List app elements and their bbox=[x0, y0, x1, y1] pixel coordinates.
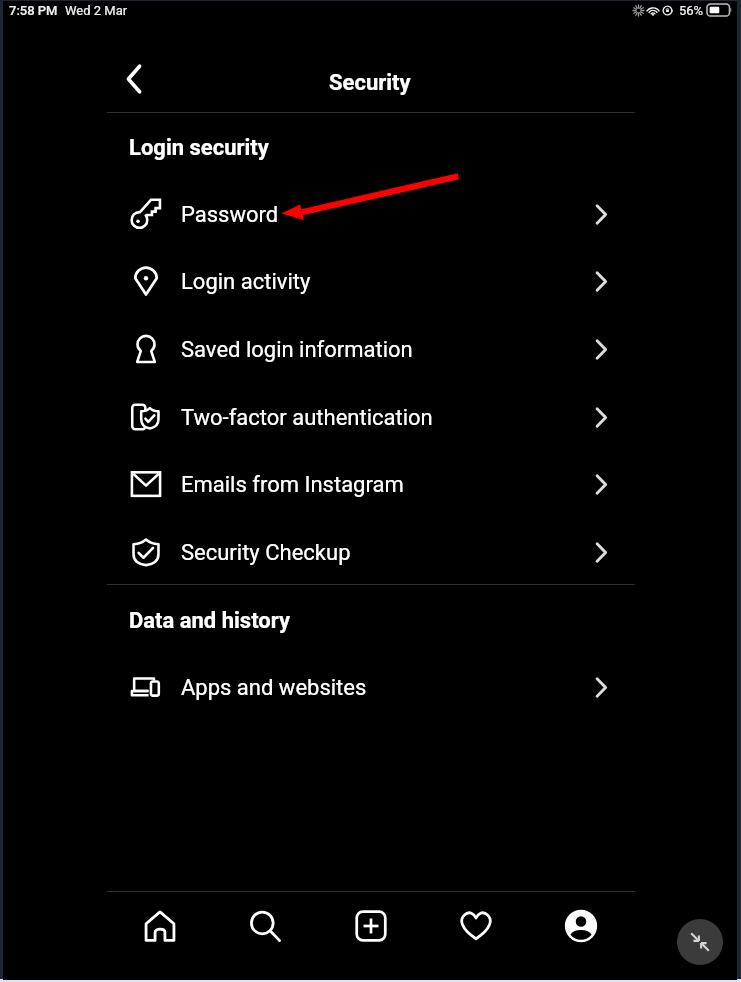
button[interactable]: Activity bbox=[449, 899, 503, 953]
button[interactable]: Exit fullscreen bbox=[677, 919, 723, 965]
staticText: 7:58 PM bbox=[9, 3, 58, 18]
button[interactable]: Password bbox=[107, 181, 635, 248]
staticText: Emails from Instagram bbox=[181, 472, 404, 498]
staticText: Security Checkup bbox=[181, 540, 351, 566]
staticText: Apps and websites bbox=[181, 675, 367, 701]
staticText: Password bbox=[181, 202, 279, 228]
staticText: Data and history bbox=[129, 608, 291, 634]
staticText: Login activity bbox=[181, 269, 311, 295]
button[interactable]: Login activity bbox=[107, 248, 635, 315]
staticText: Wed 2 Mar bbox=[65, 3, 128, 18]
button[interactable]: Security Checkup bbox=[107, 519, 635, 586]
staticText: 56% bbox=[679, 3, 704, 18]
button[interactable]: Apps and websites bbox=[107, 654, 635, 721]
button[interactable]: Emails from Instagram bbox=[107, 451, 635, 518]
staticText: Two-factor authentication bbox=[181, 405, 433, 431]
staticText: Saved login information bbox=[181, 337, 413, 363]
button[interactable]: Back bbox=[112, 57, 156, 101]
staticText: Security bbox=[329, 70, 411, 96]
button[interactable]: Saved login information bbox=[107, 316, 635, 383]
button[interactable]: Home bbox=[133, 899, 187, 953]
button[interactable]: Two-factor authentication bbox=[107, 384, 635, 451]
staticText: Login security bbox=[129, 135, 269, 161]
button[interactable]: Search bbox=[238, 899, 292, 953]
button[interactable]: Create bbox=[344, 899, 398, 953]
button[interactable]: Profile bbox=[554, 899, 608, 953]
